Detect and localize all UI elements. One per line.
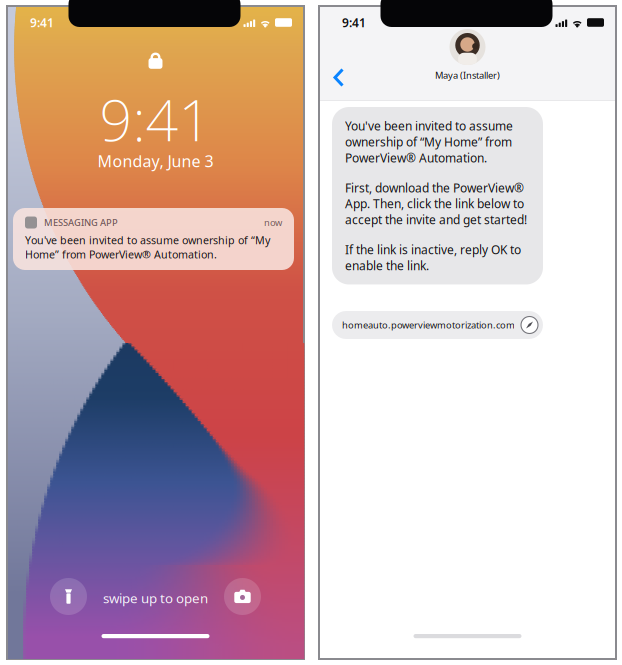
staticText: First, download the PowerView® App. Then… xyxy=(345,180,527,228)
staticText: If the link is inactive, reply OK to ena… xyxy=(345,242,521,273)
staticText: 9:41 xyxy=(30,14,54,30)
staticText: 9:41 xyxy=(342,14,366,30)
staticText: Monday, June 3 xyxy=(97,150,213,172)
staticText: swipe up to open xyxy=(103,589,208,607)
staticText: Maya (Installer) xyxy=(435,69,500,81)
staticText: homeauto.powerviewmotorization.com xyxy=(342,319,515,331)
button[interactable]: Flashlight xyxy=(50,578,87,615)
staticText: now xyxy=(264,216,282,229)
staticText: MESSAGING APP xyxy=(44,216,118,229)
button[interactable]: MESSAGING APP xyxy=(13,208,294,270)
staticText: You've been invited to assume ownership … xyxy=(25,233,270,261)
button[interactable]: homeauto.powerviewmotorization.com xyxy=(332,311,543,339)
button[interactable]: Camera xyxy=(224,578,261,615)
staticText: You've been invited to assume ownership … xyxy=(345,118,513,166)
button[interactable]: Back xyxy=(324,59,354,96)
staticText: 9:41 xyxy=(99,81,211,157)
